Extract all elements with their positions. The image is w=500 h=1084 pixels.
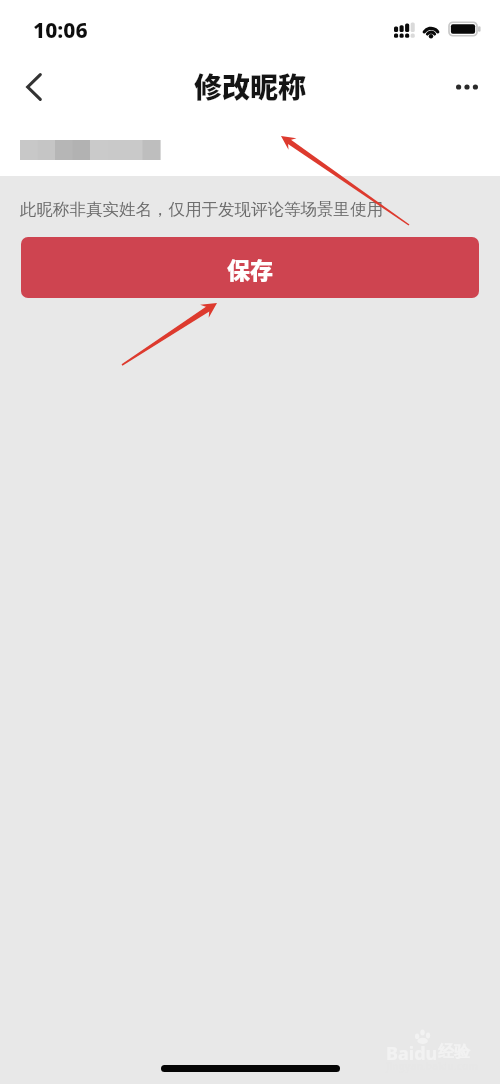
- staticText: 保存: [227, 252, 273, 285]
- button[interactable]: 保存: [21, 237, 479, 298]
- staticText: 经验: [438, 1042, 470, 1062]
- staticText: 此昵称非真实姓名，仅用于发现评论等场景里使用: [20, 199, 383, 220]
- staticText: 10:06: [33, 16, 88, 45]
- staticText: Baidu: [386, 1041, 438, 1066]
- button[interactable]: Back: [0, 56, 62, 118]
- button[interactable]: More options: [438, 56, 500, 118]
- button[interactable]: [0, 118, 500, 176]
- staticText: 修改昵称: [194, 66, 307, 107]
